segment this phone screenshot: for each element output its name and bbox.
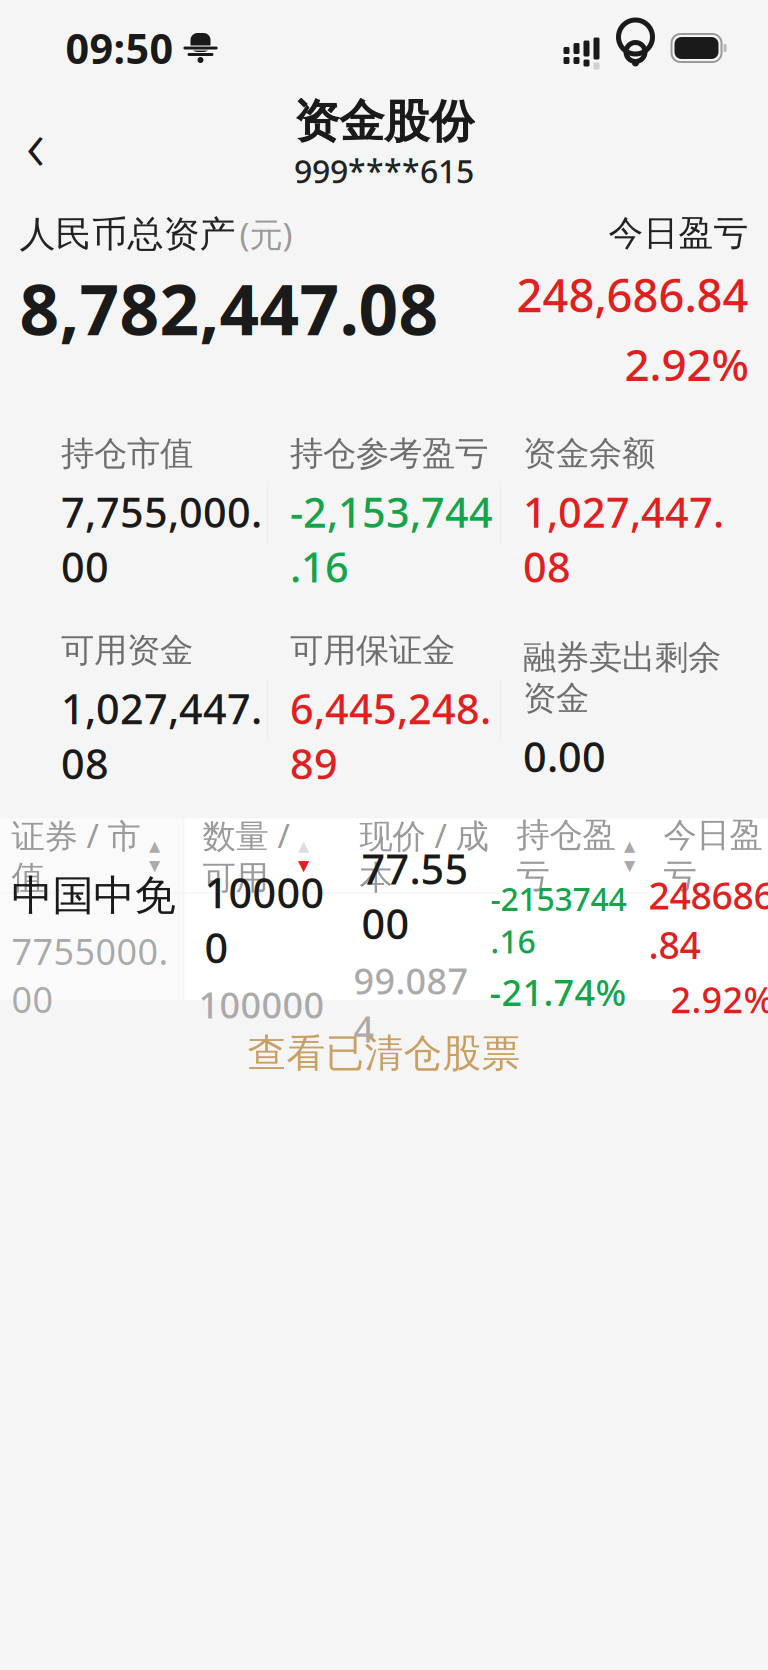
staticText: -21.74% [489, 968, 626, 1016]
button[interactable]: 中国中免 [0, 894, 768, 1000]
staticText: 资金余额 [523, 433, 655, 474]
staticText: 中国中免 [11, 870, 175, 921]
staticText: 1,027,447.08 [523, 484, 724, 594]
staticText: 今日盈亏 [663, 815, 762, 897]
staticText: 2.92% [670, 975, 768, 1023]
staticText: 09:50 [65, 21, 173, 75]
staticText: ▲ [149, 837, 160, 854]
staticText: 资金股份 [294, 94, 474, 150]
staticText: 248686.84 [648, 870, 768, 969]
staticText: 今日盈亏 [608, 212, 748, 255]
staticText: 证券 / 市值 [11, 813, 140, 898]
staticText: ▼ [298, 857, 309, 874]
staticText: 可用资金 [61, 630, 193, 671]
staticText: 1,027,447.08 [61, 681, 262, 791]
staticText: 数量 / 可用 [202, 813, 289, 898]
staticText: 8,782,447.08 [19, 262, 438, 354]
staticText: ‹ [26, 95, 45, 191]
staticText: 可用保证金 [290, 630, 455, 671]
staticText: ▲ [624, 837, 635, 854]
staticText: 100000 [204, 865, 324, 975]
staticText: 人民币总资产 [19, 212, 235, 256]
staticText: 99.0874 [353, 957, 468, 1052]
staticText: 77.5500 [361, 841, 468, 951]
staticText: -2153744.16 [490, 877, 626, 962]
staticText: 7755000.00 [11, 927, 168, 1023]
button[interactable]: 返回 [0, 101, 77, 185]
staticText: 现价 / 成本 [359, 813, 488, 898]
staticText: 100000 [198, 981, 324, 1028]
staticText: ▲ [298, 837, 309, 854]
staticText: 2.92% [624, 335, 748, 393]
staticText: 7,755,000.00 [61, 484, 262, 594]
staticText: 持仓参考盈亏 [290, 433, 488, 474]
staticText: 融券卖出剩余资金 [523, 637, 721, 719]
staticText: 248,686.84 [516, 265, 748, 325]
staticText: 持仓市值 [61, 433, 193, 474]
staticText: (元) [239, 212, 292, 256]
staticText: -2,153,744.16 [290, 484, 493, 594]
staticText: 6,445,248.89 [290, 681, 491, 791]
button[interactable]: 查看已清仓股票 [0, 1000, 768, 1107]
staticText: ▼ [624, 857, 635, 874]
staticText: ▼ [149, 857, 160, 874]
staticText: 持仓盈亏 [516, 815, 615, 897]
staticText: 0.00 [523, 729, 606, 784]
staticText: 查看已清仓股票 [247, 1030, 520, 1077]
staticText: 999****615 [294, 150, 474, 192]
